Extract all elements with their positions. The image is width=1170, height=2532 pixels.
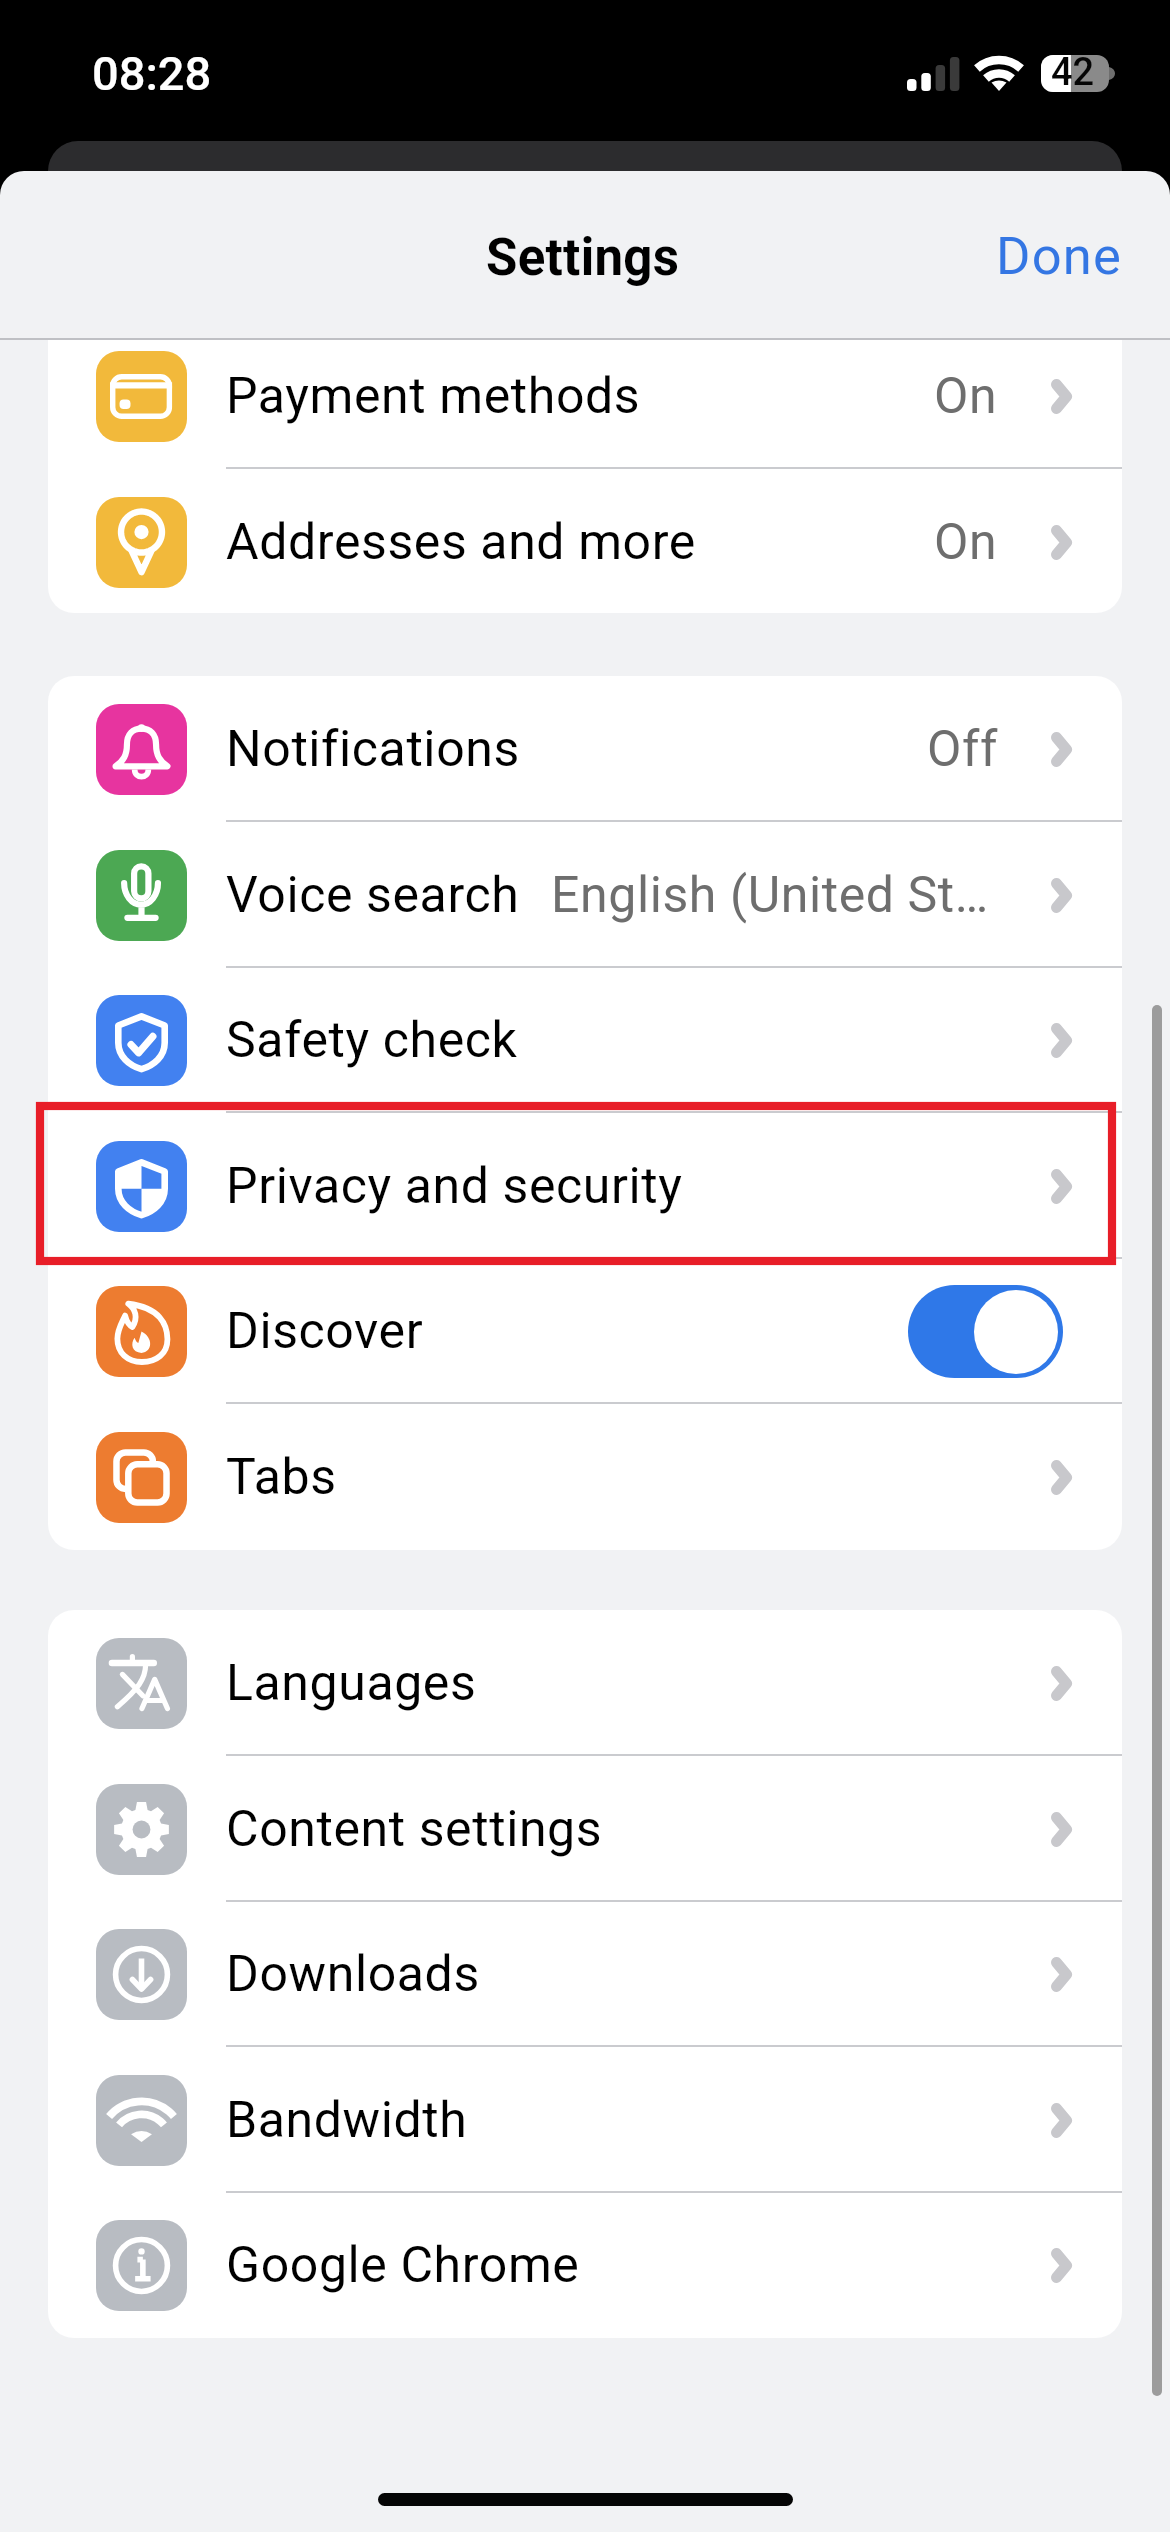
staticText: Downloads	[226, 1945, 480, 2004]
staticText: Done	[996, 225, 1123, 287]
staticText: Discover	[226, 1302, 424, 1361]
staticText: Google Chrome	[226, 2236, 580, 2295]
button[interactable]: Done	[967, 203, 1152, 309]
button[interactable]: Discover	[48, 1258, 1122, 1404]
staticText: Addresses and more	[226, 513, 696, 572]
staticText: Off	[927, 720, 998, 779]
button[interactable]: Google Chrome	[48, 2192, 1122, 2338]
staticText: On	[934, 367, 998, 426]
staticText: 42	[1051, 50, 1095, 95]
staticText: Content settings	[226, 1800, 603, 1859]
staticText: English (United St…	[551, 866, 989, 925]
button[interactable]: Content settings	[48, 1756, 1122, 1902]
staticText: Tabs	[226, 1448, 337, 1507]
button[interactable]: Discover on	[908, 1285, 1063, 1378]
button[interactable]: Bandwidth	[48, 2047, 1122, 2193]
button[interactable]: Tabs	[48, 1404, 1122, 1550]
staticText: On	[934, 513, 998, 572]
staticText: Payment methods	[226, 367, 641, 426]
button[interactable]: Payment methods	[48, 340, 1122, 469]
button[interactable]: Voice search	[48, 822, 1122, 968]
button[interactable]: Privacy and security	[48, 1113, 1122, 1259]
staticText: Bandwidth	[226, 2091, 468, 2150]
button[interactable]: Languages	[48, 1610, 1122, 1756]
staticText: Settings	[486, 228, 680, 288]
staticText: Notifications	[226, 720, 520, 779]
button[interactable]: Addresses and more	[48, 469, 1122, 613]
staticText: 08:28	[92, 46, 212, 101]
staticText: Languages	[226, 1654, 477, 1713]
staticText: Privacy and security	[226, 1157, 683, 1216]
button[interactable]: Notifications	[48, 676, 1122, 822]
staticText: Voice search	[226, 866, 520, 925]
button[interactable]: Downloads	[48, 1901, 1122, 2047]
staticText: Safety check	[226, 1011, 518, 1070]
button[interactable]: Safety check	[48, 967, 1122, 1113]
